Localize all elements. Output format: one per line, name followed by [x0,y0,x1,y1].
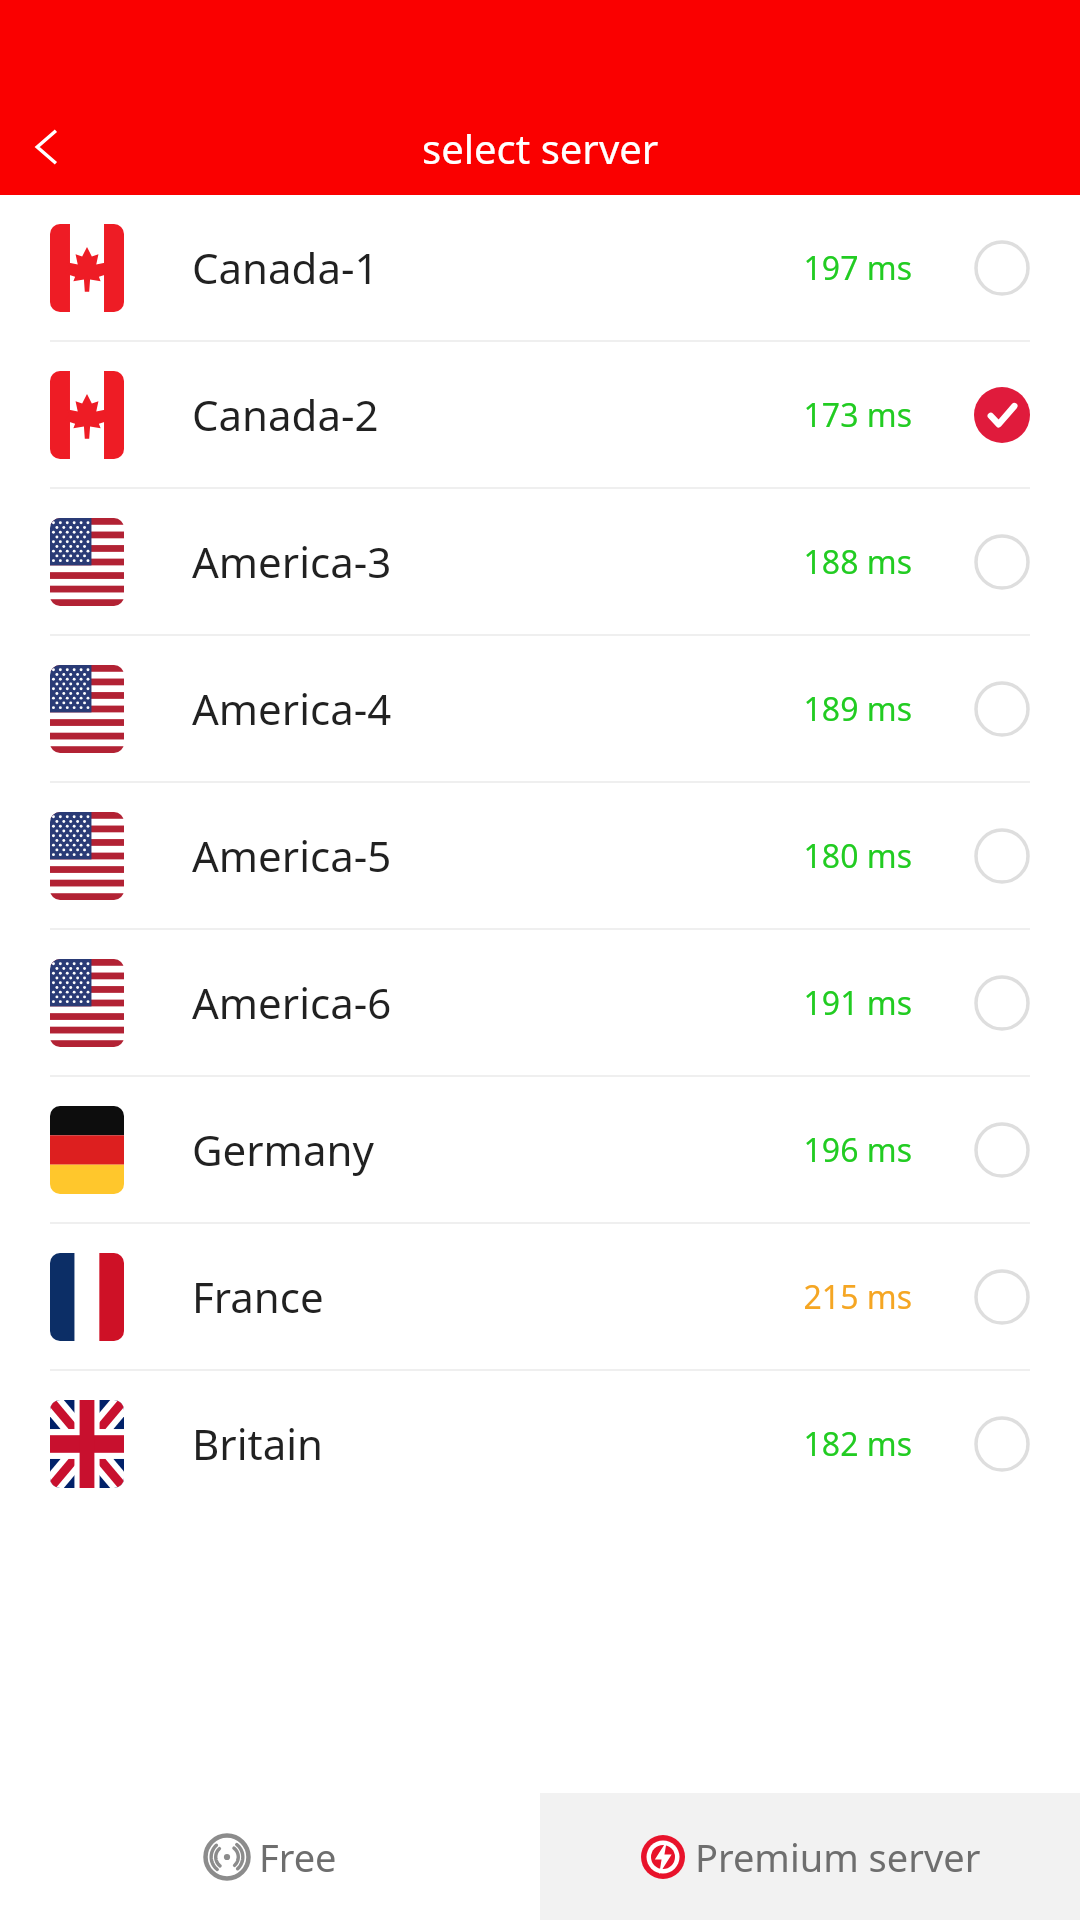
staticText: America-6 [192,974,803,1031]
staticText: Germany [192,1121,803,1178]
staticText: 173 ms [803,393,912,437]
button[interactable]: Canada-2 [0,342,1080,487]
staticText: 191 ms [803,981,912,1025]
button[interactable]: America-3 [0,489,1080,634]
staticText: Canada-2 [192,386,803,443]
staticText: Free [259,1831,337,1883]
staticText: America-5 [192,827,803,884]
staticText: Britain [192,1415,803,1472]
staticText: select server [422,121,659,175]
button[interactable]: France [0,1224,1080,1369]
button[interactable]: Back [10,109,86,185]
button[interactable]: Britain [0,1371,1080,1516]
button[interactable]: Premium server [540,1793,1080,1920]
staticText: 215 ms [803,1275,912,1319]
staticText: 180 ms [803,834,912,878]
staticText: Premium server [695,1831,981,1883]
staticText: 197 ms [803,246,912,290]
staticText: America-4 [192,680,803,737]
button[interactable]: America-5 [0,783,1080,928]
staticText: France [192,1268,803,1325]
staticText: Canada-1 [192,239,803,296]
staticText: 189 ms [803,687,912,731]
button[interactable]: Canada-1 [0,195,1080,340]
staticText: America-3 [192,533,803,590]
staticText: 182 ms [803,1422,912,1466]
button[interactable]: America-4 [0,636,1080,781]
button[interactable]: Germany [0,1077,1080,1222]
button[interactable]: Free [0,1793,540,1920]
button[interactable]: America-6 [0,930,1080,1075]
staticText: 196 ms [803,1128,912,1172]
staticText: 188 ms [803,540,912,584]
